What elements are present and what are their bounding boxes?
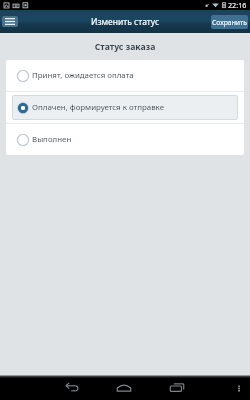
staticText: Выполнен [32, 134, 72, 145]
staticText: Изменить статус [91, 16, 160, 28]
button[interactable]: Back [55, 374, 89, 399]
button[interactable]: Menu [2, 16, 18, 27]
staticText: Сохранить [212, 18, 247, 27]
button[interactable]: Recent apps [160, 374, 194, 399]
staticText: Оплачен, формируется к отправке [32, 102, 165, 113]
button[interactable]: More options [233, 382, 245, 394]
button[interactable]: Выполнен [6, 124, 244, 155]
staticText: Статус заказа [0, 41, 250, 53]
button[interactable]: Сохранить [211, 15, 248, 29]
button[interactable]: Принят, ожидается оплата [6, 60, 244, 91]
button[interactable]: Оплачен, формируется к отправке [6, 92, 244, 123]
staticText: 22:16 [228, 0, 247, 10]
staticText: Принят, ожидается оплата [32, 70, 134, 81]
button[interactable]: Home [107, 374, 141, 399]
